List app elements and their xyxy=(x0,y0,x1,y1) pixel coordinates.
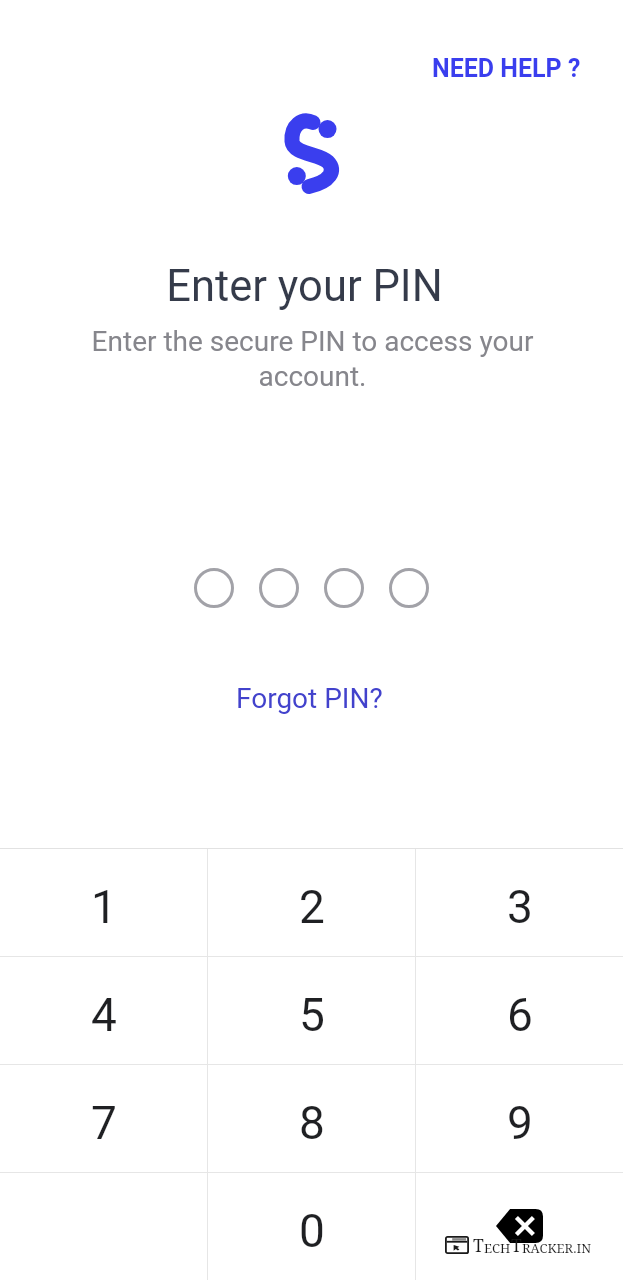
staticText: RACKER.IN xyxy=(522,1239,592,1257)
button[interactable]: App logo xyxy=(285,114,343,194)
button[interactable]: 1 xyxy=(0,849,207,956)
staticText: 6 xyxy=(507,988,533,1042)
staticText: Enter your PIN xyxy=(0,261,616,312)
button[interactable]: 4 xyxy=(0,957,207,1064)
button[interactable]: 8 xyxy=(208,1065,415,1172)
staticText: NEED HELP ? xyxy=(432,54,581,83)
button[interactable]: NEED HELP ? xyxy=(416,46,597,91)
staticText: 0 xyxy=(299,1204,325,1258)
button[interactable]: 0 xyxy=(208,1173,415,1280)
button[interactable]: 7 xyxy=(0,1065,207,1172)
staticText: 2 xyxy=(299,880,325,934)
button[interactable]: Forgot PIN? xyxy=(222,674,397,723)
button[interactable]: 5 xyxy=(208,957,415,1064)
button[interactable]: Delete last digit xyxy=(416,1173,623,1280)
staticText: 5 xyxy=(299,988,325,1042)
staticText: 1 xyxy=(91,880,117,934)
button[interactable]: 6 xyxy=(416,957,623,1064)
staticText: 9 xyxy=(507,1096,533,1150)
button[interactable]: 3 xyxy=(416,849,623,956)
staticText: ECH xyxy=(484,1239,511,1257)
button[interactable]: 9 xyxy=(416,1065,623,1172)
button[interactable]: 2 xyxy=(208,849,415,956)
staticText: 4 xyxy=(91,988,117,1042)
staticText: Enter the secure PIN to access your acco… xyxy=(61,325,564,393)
staticText: T xyxy=(473,1233,484,1257)
staticText: Forgot PIN? xyxy=(236,682,383,715)
staticText: 8 xyxy=(299,1096,325,1150)
staticText: 3 xyxy=(507,880,533,934)
staticText: T xyxy=(511,1233,522,1257)
staticText: 7 xyxy=(91,1096,117,1150)
